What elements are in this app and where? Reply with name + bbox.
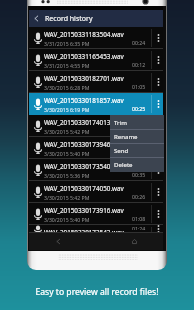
staticText: 01:24: [132, 225, 146, 230]
button[interactable]: WAV_20150330173543.wav: [29, 225, 163, 233]
button[interactable]: WAV_20150330173916.wav: [29, 203, 163, 225]
button[interactable]: WAV_20150330182701.wav: [29, 71, 163, 93]
staticText: 3/31/2015 6:35 PM: [44, 40, 90, 47]
button[interactable]: WAV_20150330173540.wav: [29, 159, 163, 181]
staticText: WAV_20150330173916.wav: [44, 206, 124, 215]
button[interactable]: More options: [152, 159, 164, 181]
staticText: WAV_20150330173540.wav: [44, 162, 124, 171]
staticText: 3/31/2015 4:55 PM: [44, 62, 90, 69]
staticText: 01:05: [132, 83, 146, 90]
staticText: Rename: [114, 132, 138, 140]
staticText: WAV_20150330174050.wav: [44, 184, 124, 193]
button[interactable]: Trim: [110, 115, 164, 129]
button[interactable]: Rename: [110, 129, 164, 143]
staticText: WAV_20150330182701.wav: [44, 74, 124, 83]
button[interactable]: More options: [152, 71, 164, 93]
button[interactable]: WAV_20150331183504.wav: [29, 27, 163, 49]
staticText: WAV_20150330173946.wav: [44, 140, 124, 149]
button[interactable]: More options: [152, 225, 164, 233]
button[interactable]: More options: [152, 27, 164, 49]
button[interactable]: Back: [54, 237, 63, 246]
staticText: Trim: [114, 118, 127, 126]
button[interactable]: WAV_20150330174013.wav: [29, 115, 163, 137]
staticText: WAV_20150330181857.wav: [44, 96, 124, 105]
staticText: 00:24: [132, 39, 146, 46]
button[interactable]: Delete: [110, 157, 164, 171]
staticText: 00:31: [132, 127, 146, 134]
staticText: WAV_20150331165453.wav: [44, 52, 124, 61]
staticText: 3/30/2015 6:28 PM: [44, 84, 90, 91]
button[interactable]: WAV_20150330173946.wav: [29, 137, 163, 159]
button[interactable]: More options: [152, 93, 164, 115]
button[interactable]: More options: [152, 181, 164, 203]
button[interactable]: Home: [130, 237, 139, 246]
staticText: Record history: [45, 14, 93, 24]
staticText: Send: [114, 146, 129, 154]
button[interactable]: WAV_20150330174050.wav: [29, 181, 163, 203]
staticText: 00:12: [132, 61, 146, 68]
button[interactable]: Send: [110, 143, 164, 157]
staticText: WAV_20150331183504.wav: [44, 30, 124, 39]
button[interactable]: More options: [152, 137, 164, 159]
button[interactable]: WAV_20150331165453.wav: [29, 49, 163, 71]
other: Back: [32, 14, 41, 23]
staticText: WAV_20150330174013.wav: [44, 118, 124, 127]
staticText: 3/30/2015 5:40 PM: [44, 216, 90, 223]
staticText: 3/30/2015 5:42 PM: [44, 194, 90, 201]
staticText: 3/30/2015 6:19 PM: [44, 106, 90, 113]
staticText: Delete: [114, 160, 133, 168]
staticText: 3/30/2015 5:42 PM: [44, 128, 90, 135]
staticText: Easy to preview all record files!: [0, 286, 194, 298]
staticText: 3/30/2015 5:40 PM: [44, 150, 90, 157]
staticText: WAV_20150330173543.wav: [44, 228, 124, 236]
staticText: 00:35: [132, 171, 146, 178]
button[interactable]: WAV_20150330181857.wav: [29, 93, 163, 115]
button[interactable]: More options: [152, 49, 164, 71]
staticText: 01:08: [132, 215, 146, 222]
staticText: 00:25: [132, 105, 146, 112]
staticText: 00:26: [132, 193, 146, 200]
button[interactable]: More options: [152, 115, 164, 137]
button[interactable]: Back: [29, 10, 163, 27]
button[interactable]: More options: [152, 203, 164, 225]
staticText: 3/30/2015 5:36 PM: [44, 172, 90, 179]
